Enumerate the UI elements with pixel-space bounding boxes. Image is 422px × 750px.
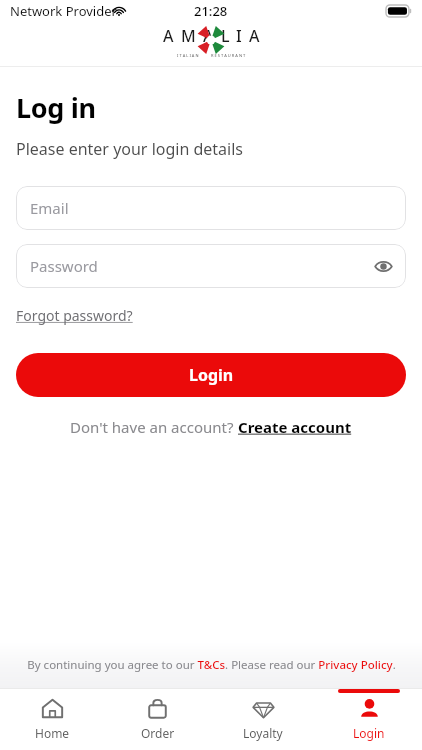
button[interactable]: Create account	[238, 417, 352, 437]
button[interactable]: Home	[0, 688, 105, 750]
staticText: Home	[35, 725, 70, 741]
staticText: A	[249, 25, 260, 47]
staticText: Loyalty	[243, 725, 283, 741]
staticText: Login	[189, 364, 234, 386]
staticText: Email	[30, 198, 69, 218]
button[interactable]: Login	[316, 688, 422, 750]
button[interactable]: Show password	[372, 255, 394, 277]
staticText: Login	[353, 725, 385, 741]
staticText: Create account	[238, 417, 352, 437]
staticText: L	[221, 25, 230, 47]
button[interactable]: Password	[16, 244, 406, 288]
button[interactable]: Loyalty	[210, 688, 316, 750]
staticText: Network Provider	[10, 2, 117, 20]
button[interactable]: Order	[105, 688, 210, 750]
staticText: M	[181, 25, 196, 47]
staticText: A	[203, 25, 214, 47]
button[interactable]: Forgot password?	[16, 306, 133, 325]
staticText: Password	[30, 256, 98, 276]
staticText: I T A L I A N R E S T A U R A N T	[177, 53, 246, 58]
staticText: Log in	[16, 89, 96, 126]
staticText: Please enter your login details	[16, 138, 243, 160]
staticText: Forgot password?	[16, 306, 133, 325]
staticText: 21:28	[194, 2, 228, 20]
staticText: I	[236, 25, 242, 47]
staticText: A	[163, 25, 174, 47]
staticText: Order	[141, 725, 175, 741]
staticText: By continuing you agree to our T&Cs. Ple…	[27, 657, 396, 673]
staticText: Don't have an account?	[70, 417, 238, 437]
button[interactable]: Login	[16, 353, 406, 397]
button[interactable]: Email	[16, 186, 406, 230]
